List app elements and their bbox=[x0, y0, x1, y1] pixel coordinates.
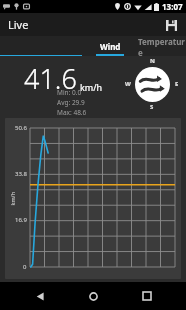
button[interactable]: Save bbox=[162, 16, 180, 34]
staticText: Avg: 29.9 bbox=[57, 98, 85, 107]
staticText: E bbox=[175, 80, 179, 88]
button[interactable]: Home bbox=[79, 282, 107, 310]
staticText: km/h bbox=[80, 81, 103, 93]
staticText: 13:07 bbox=[162, 1, 183, 12]
staticText: N bbox=[150, 57, 155, 65]
staticText: Max: 48.6 bbox=[57, 108, 87, 117]
staticText: Temperature bbox=[138, 36, 186, 56]
button[interactable]: Recents bbox=[133, 282, 161, 310]
staticText: W bbox=[125, 80, 131, 88]
staticText: Wind bbox=[100, 41, 121, 52]
button[interactable]: Wind bbox=[82, 36, 138, 56]
button[interactable]: km/h bbox=[5, 118, 181, 279]
button[interactable] bbox=[0, 36, 82, 56]
staticText: Min: 0.0 bbox=[57, 88, 82, 97]
staticText: 0 bbox=[23, 263, 27, 271]
staticText: 41.6 bbox=[24, 60, 77, 97]
staticText: S bbox=[150, 103, 154, 111]
staticText: Live bbox=[8, 17, 29, 32]
staticText: 50.6 bbox=[15, 124, 27, 132]
button[interactable]: Temperature bbox=[138, 36, 186, 56]
staticText: 33.8 bbox=[15, 170, 27, 178]
button[interactable]: Wind direction bbox=[135, 67, 170, 102]
staticText: 16.9 bbox=[15, 216, 27, 224]
staticText: km/h bbox=[8, 191, 15, 205]
button[interactable]: Back bbox=[26, 282, 54, 310]
